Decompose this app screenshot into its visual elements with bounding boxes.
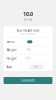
- staticText: Your Health Info: [16, 29, 39, 32]
- staticText: Enter your details below: [20, 33, 36, 35]
- staticText: Normal: [23, 18, 32, 21]
- staticText: Height: [6, 57, 16, 60]
- staticText: 10.0: [23, 10, 33, 18]
- staticText: Weight: [6, 48, 16, 52]
- staticText: Calculate: [21, 79, 35, 82]
- staticText: 170: [24, 57, 30, 60]
- staticText: 70: [26, 48, 30, 52]
- staticText: Metric: [6, 40, 14, 44]
- staticText: Age: [6, 65, 12, 69]
- staticText: 25: [34, 65, 38, 69]
- button[interactable]: Calculate: [3, 77, 52, 84]
